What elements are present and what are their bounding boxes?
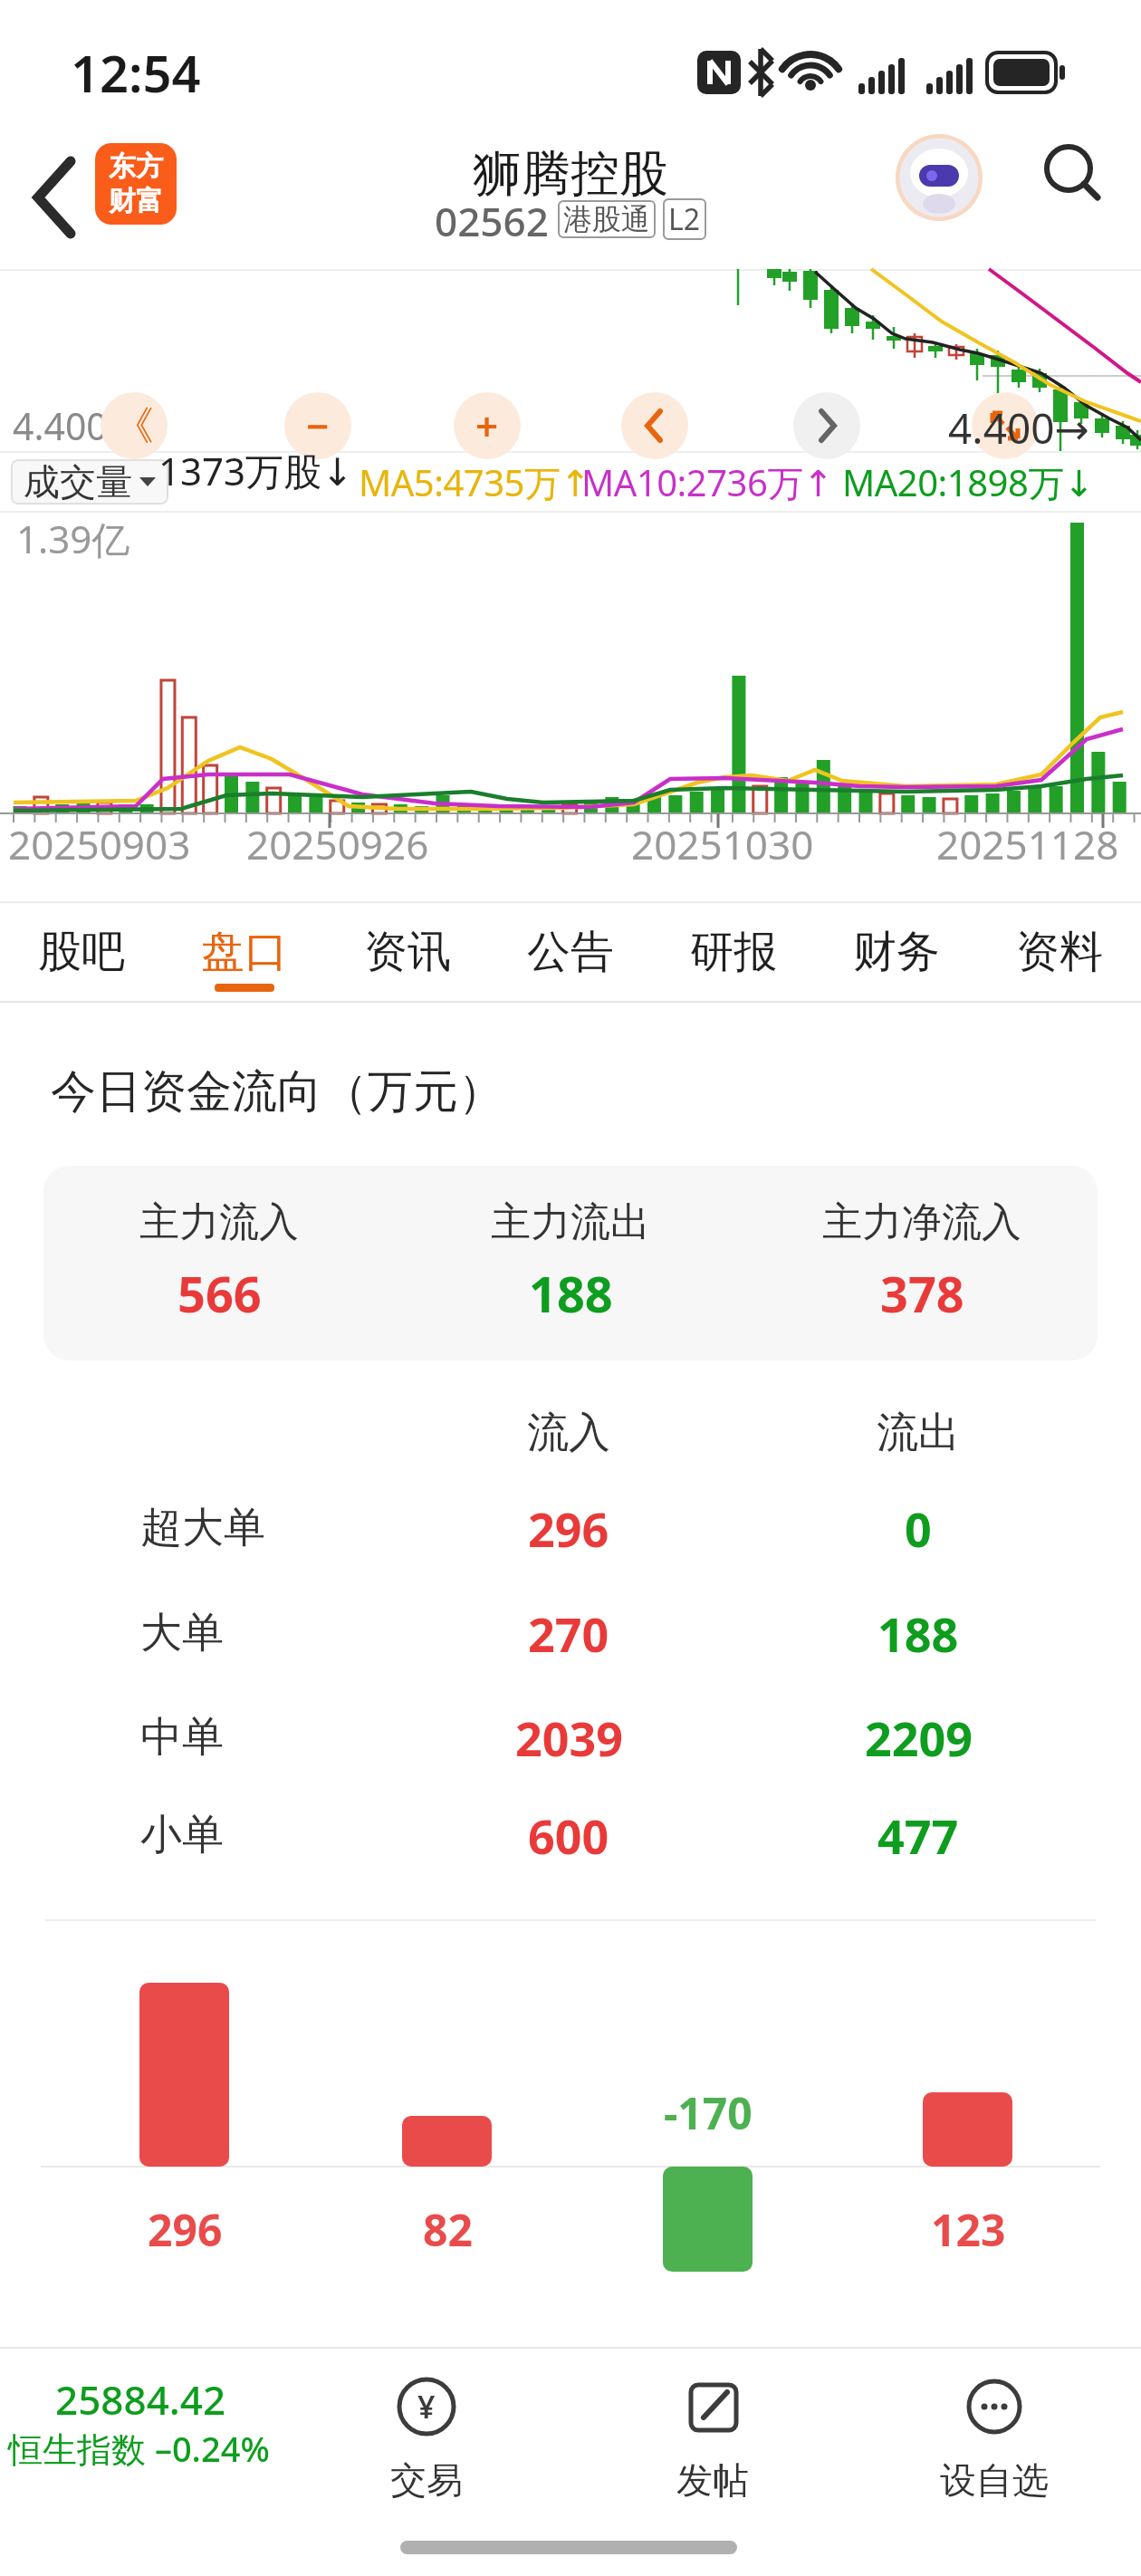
staticText: 188 [529, 1260, 613, 1327]
staticText: 财富 [109, 184, 163, 218]
staticText: 流出 [877, 1407, 960, 1459]
staticText: MA20:1898万↓ [842, 457, 1094, 507]
staticText: 公告 [527, 925, 614, 979]
staticText: 发帖 [676, 2457, 749, 2503]
staticText: L2 [668, 199, 701, 239]
staticText: 交易 [390, 2457, 463, 2503]
staticText: 财务 [853, 925, 940, 979]
staticText: 2209 [865, 1706, 973, 1770]
staticText: 成交量 [24, 459, 132, 505]
staticText: 270 [528, 1601, 609, 1666]
button[interactable]: 主力流入 [43, 1166, 1098, 1360]
button[interactable]: + [454, 392, 521, 459]
staticText: 主力流入 [139, 1197, 299, 1247]
staticText: 1373万股↓ [158, 445, 354, 496]
staticText: 4.400→ [948, 399, 1090, 457]
staticText: 港股通 [563, 201, 650, 237]
staticText: 中单 [140, 1711, 224, 1764]
staticText: 4.400 [13, 400, 108, 451]
staticText: 资讯 [364, 925, 451, 979]
button[interactable] [621, 392, 688, 459]
staticText: 1.39亿 [16, 513, 130, 564]
staticText: MA5:4735万↑ [359, 457, 590, 507]
staticText: 设自选 [940, 2457, 1049, 2503]
button[interactable]: 25884.42 [5, 2365, 276, 2483]
button[interactable]: 财务 [815, 901, 978, 1003]
button[interactable]: 发帖 [631, 2365, 794, 2510]
button[interactable] [1036, 136, 1108, 208]
staticText: 12:54 [71, 38, 201, 107]
staticText: 477 [877, 1803, 959, 1868]
button[interactable] [793, 392, 860, 459]
staticText: 20250903 [8, 817, 191, 871]
staticText: MA10:2736万↑ [581, 457, 833, 507]
staticText: 狮腾控股 [473, 143, 668, 205]
button[interactable] [972, 392, 1039, 459]
staticText: 研报 [690, 925, 777, 979]
staticText: 20250926 [246, 817, 429, 871]
button[interactable]: 《 [101, 392, 168, 459]
button[interactable]: 设自选 [913, 2365, 1076, 2510]
staticText: 资料 [1016, 925, 1103, 979]
staticText: 流入 [527, 1407, 610, 1459]
staticText: 82 [423, 2200, 473, 2259]
staticText: 恒生指数 –0.24% [8, 2425, 270, 2472]
staticText: 0 [905, 1496, 932, 1561]
staticText: 600 [528, 1803, 609, 1868]
staticText: 188 [877, 1601, 959, 1666]
staticText: ¥ [417, 2386, 436, 2427]
button[interactable]: − [284, 392, 351, 459]
button[interactable]: 公告 [489, 901, 652, 1003]
staticText: 东方 [109, 149, 163, 184]
staticText: 主力流出 [491, 1197, 650, 1247]
button[interactable]: 盘口 [163, 901, 326, 1003]
button[interactable]: 资料 [978, 901, 1141, 1003]
staticText: 20251030 [631, 817, 814, 871]
staticText: − [306, 399, 330, 453]
button[interactable]: 研报 [652, 901, 815, 1003]
staticText: 股吧 [38, 925, 125, 979]
staticText: 296 [148, 2200, 223, 2259]
staticText: 123 [931, 2200, 1006, 2259]
button[interactable]: ¥ [345, 2365, 508, 2510]
staticText: 566 [177, 1260, 262, 1327]
staticText: 25884.42 [55, 2372, 226, 2427]
staticText: 2039 [515, 1706, 623, 1770]
staticText: 378 [880, 1260, 964, 1327]
button[interactable] [18, 154, 91, 245]
staticText: 296 [528, 1496, 609, 1561]
button[interactable]: 东方 [95, 143, 177, 225]
staticText: + [475, 399, 499, 453]
staticText: 02562 [435, 194, 549, 245]
button[interactable]: 资讯 [326, 901, 489, 1003]
staticText: 《 [114, 401, 154, 451]
button[interactable]: 成交量 [11, 459, 168, 505]
button[interactable]: 股吧 [0, 901, 163, 1003]
button[interactable] [896, 134, 983, 221]
staticText: 今日资金流向（万元） [51, 1063, 503, 1120]
staticText: 大单 [140, 1607, 224, 1659]
staticText: 小单 [140, 1809, 224, 1861]
staticText: 20251128 [936, 817, 1119, 871]
staticText: -170 [664, 2083, 753, 2142]
staticText: 超大单 [140, 1502, 265, 1554]
staticText: 盘口 [201, 925, 288, 979]
staticText: 主力净流入 [822, 1197, 1021, 1247]
